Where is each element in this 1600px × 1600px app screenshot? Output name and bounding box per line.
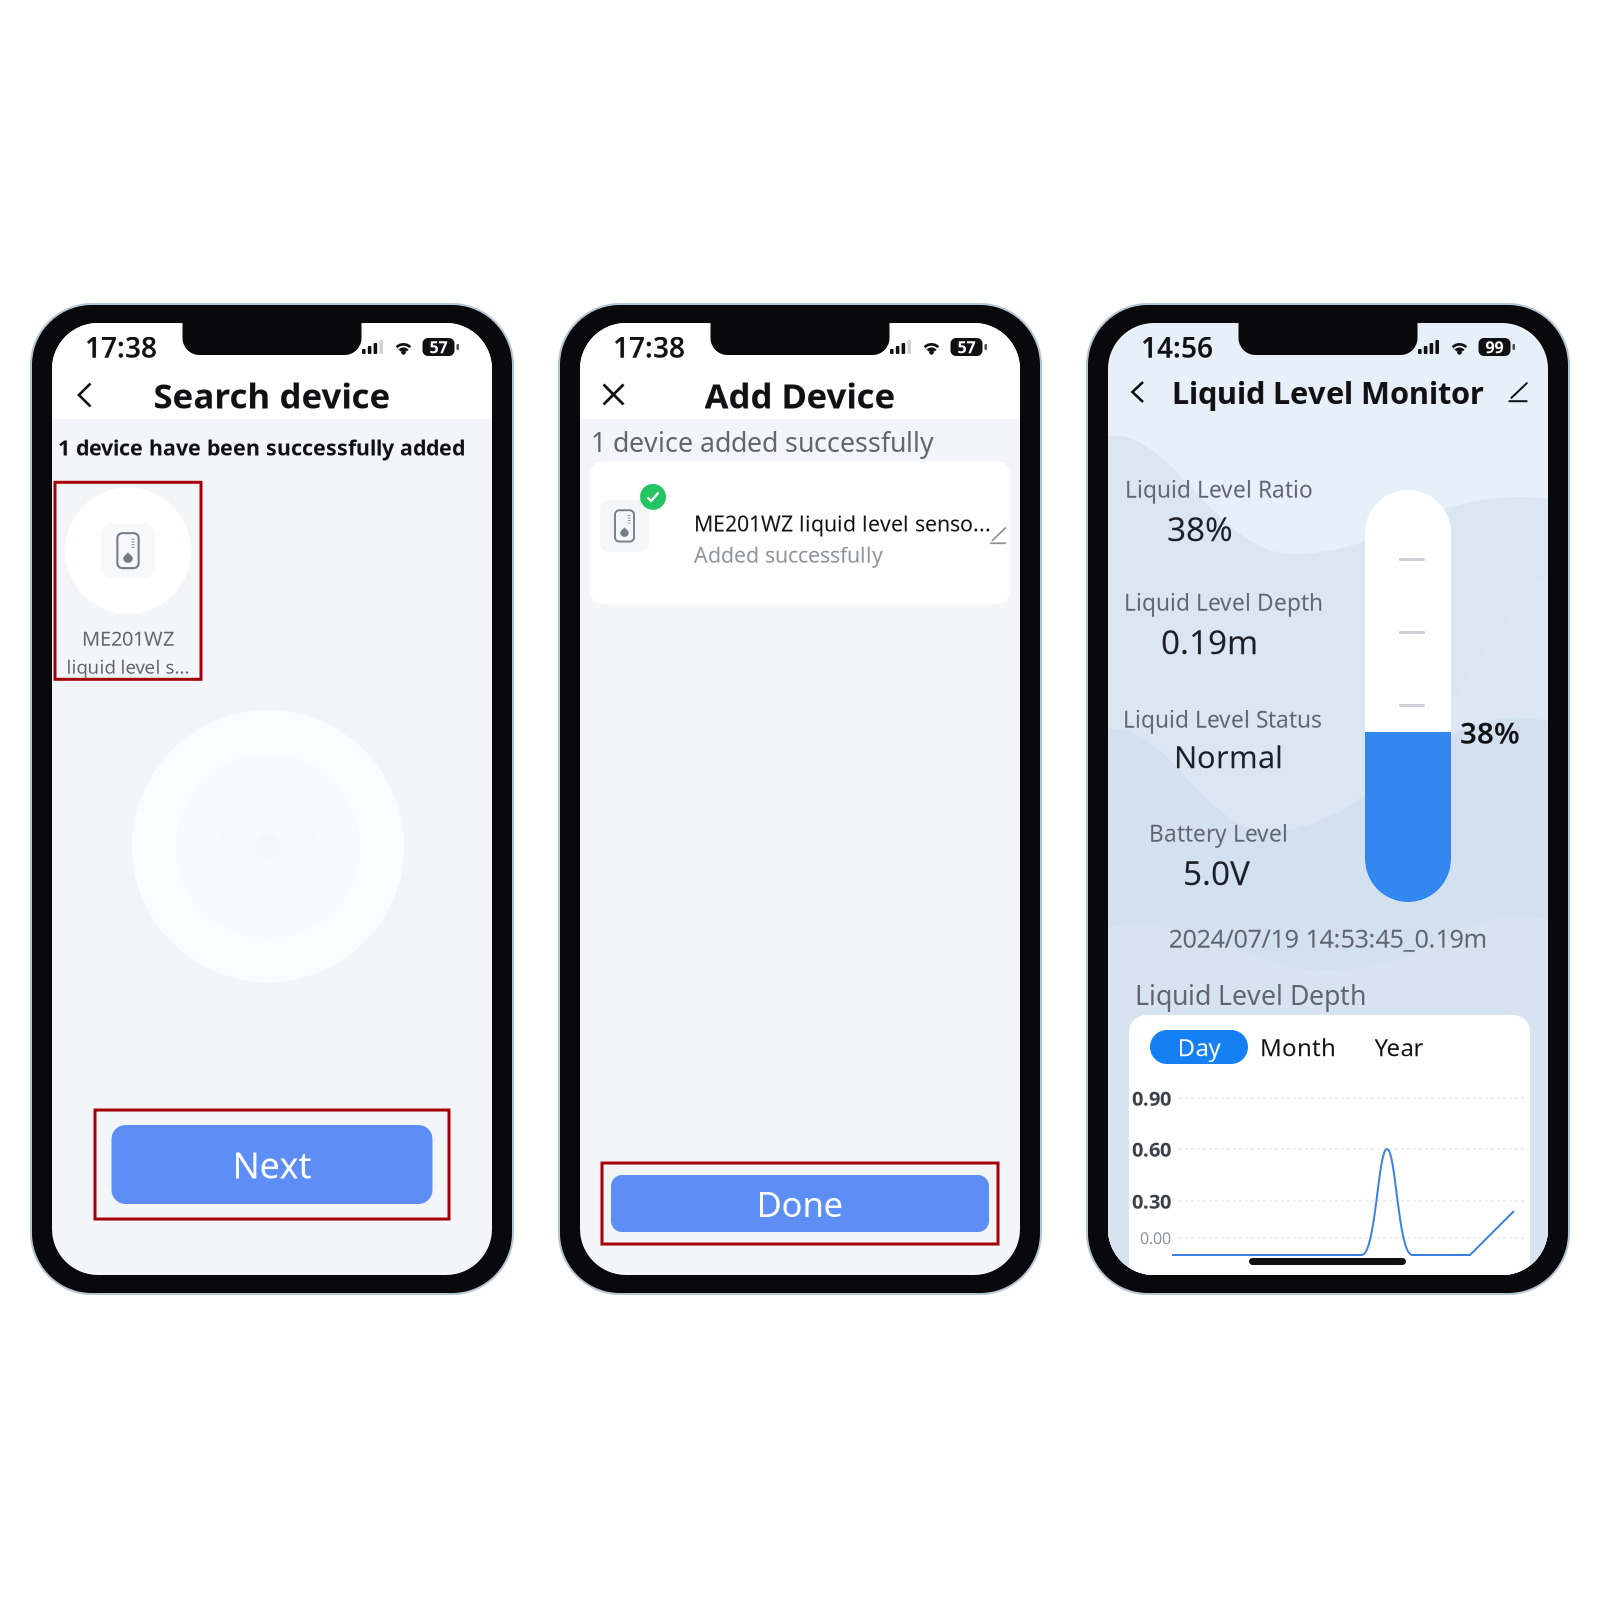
button[interactable]: Back [64,374,106,416]
button[interactable]: Year [1348,1030,1450,1064]
staticText: Liquid Level Monitor [1172,372,1484,412]
staticText: 57 [957,336,975,358]
staticText: Month [1260,1031,1336,1063]
staticText: Add Device [704,372,895,418]
staticText: 38% [1167,506,1233,550]
button[interactable]: Done [611,1175,989,1232]
staticText: 17:38 [85,328,157,366]
staticText: 5.0V [1183,850,1250,894]
staticText: Liquid Level Depth [1135,977,1366,1012]
staticText: 0.30 [1132,1188,1171,1214]
staticText: 2024/07/19 14:53:45_0.19m [1168,921,1487,955]
staticText: Added successfully [694,540,883,569]
staticText: Liquid Level Depth [1124,587,1323,617]
staticText: 38% [1460,713,1520,752]
staticText: Day [1177,1031,1220,1063]
staticText: 0.90 [1132,1085,1171,1111]
staticText: 14:56 [1141,328,1213,366]
button[interactable]: ME201WZ liquid level senso... [590,461,1010,604]
button[interactable]: Back [1119,370,1157,414]
staticText: Liquid Level Ratio [1125,474,1313,504]
button[interactable]: Rename device [1499,370,1537,414]
button[interactable]: ME201WZ [55,482,201,679]
button[interactable]: Rename device [978,515,1018,555]
button[interactable]: Day [1150,1030,1248,1064]
staticText: ME201WZ liquid level senso... [694,509,991,537]
staticText: 0.19m [1161,619,1258,663]
staticText: 1 device added successfully [591,424,934,459]
staticText: Next [232,1141,311,1188]
staticText: 57 [429,336,447,358]
staticText: Year [1374,1031,1423,1063]
staticText: 99 [1485,336,1503,358]
staticText: liquid level s... [66,654,189,679]
staticText: Done [756,1180,843,1226]
staticText: Search device [153,372,390,418]
staticText: ME201WZ [82,625,174,651]
staticText: Normal [1174,736,1283,777]
button[interactable]: Month [1248,1030,1348,1064]
button[interactable]: Close [593,374,635,416]
staticText: Liquid Level Status [1123,704,1322,734]
staticText: Battery Level [1149,818,1288,848]
staticText: 17:38 [613,328,685,366]
staticText: 0.60 [1132,1136,1171,1162]
button[interactable]: Next [111,1125,432,1204]
staticText: 0.00 [1140,1227,1171,1249]
staticText: 1 device have been successfully added [58,433,465,461]
